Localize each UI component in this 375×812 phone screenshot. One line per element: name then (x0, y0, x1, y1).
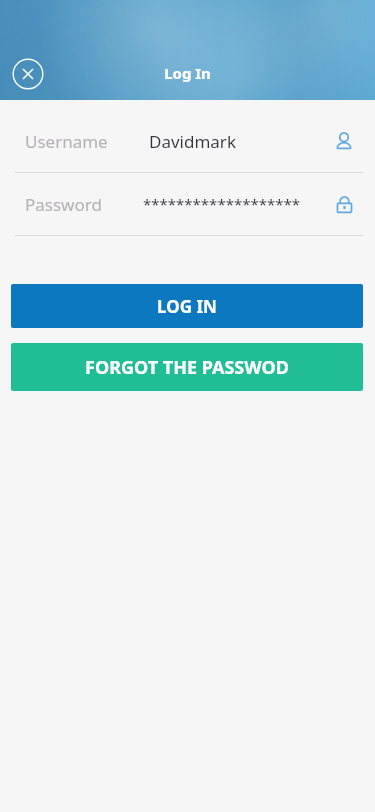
staticText: Log In (164, 63, 211, 83)
staticText: Davidmark (149, 130, 236, 153)
button[interactable]: FORGOT THE PASSWOD (11, 343, 363, 391)
staticText: FORGOT THE PASSWOD (85, 355, 289, 380)
other: Password (331, 191, 357, 217)
staticText: Username (25, 130, 108, 153)
staticText: ******************* (143, 194, 301, 214)
staticText: LOG IN (157, 295, 217, 318)
button[interactable]: Username (0, 110, 375, 172)
button[interactable]: LOG IN (11, 284, 363, 328)
other: Username (331, 128, 357, 154)
staticText: Password (25, 193, 102, 216)
button[interactable]: Close (12, 58, 44, 90)
button[interactable]: Password (0, 173, 375, 235)
